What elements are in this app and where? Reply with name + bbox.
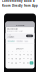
button[interactable]: 29 [26,61,29,64]
button[interactable]: 14 [22,53,26,56]
button[interactable]: 13 [18,53,22,56]
staticText: 15 [27,54,29,56]
staticText: Parking [17,40,23,42]
staticText: M [12,50,13,52]
button[interactable]: 18 [10,57,14,60]
button[interactable]: 20 [18,57,22,60]
button[interactable]: Parking [16,40,23,42]
staticText: Grand Hotel [16,24,24,26]
staticText: 22 [27,58,29,60]
button[interactable]: Book [26,35,33,37]
staticText: 13 [19,54,21,56]
staticText: 16 [30,54,32,56]
staticText: Deluxe King Suite [7,28,18,30]
staticText: 20 [19,58,21,60]
button[interactable]: Breakfast [7,40,15,42]
button[interactable]: Spa [24,40,28,42]
staticText: 29 [27,62,29,64]
staticText: 14 [23,54,25,56]
staticText: Room Directly from App [2,4,38,7]
staticText: 12 [15,54,17,56]
staticText: Book [28,35,32,37]
button[interactable]: 16 [30,53,33,56]
staticText: $180 / night [7,36,14,38]
button[interactable]: 10 [7,53,10,56]
staticText: 18 [11,58,13,60]
button[interactable]: 19 [14,57,18,60]
button[interactable]: 21 [22,57,26,60]
button[interactable]: 12 [14,53,18,56]
staticText: 19 [15,58,17,60]
button[interactable]: 11 [10,53,14,56]
staticText: 28 [23,62,25,64]
staticText: S [31,50,32,52]
staticText: Spa [25,40,28,42]
staticText: From [7,34,11,36]
staticText: 10 [7,54,9,56]
button[interactable]: 28 [22,61,26,64]
staticText: T [16,50,17,52]
staticText: 24 [7,62,9,64]
button[interactable]: 17 [7,57,10,60]
staticText: 11 [11,54,13,56]
staticText: City view · 32 sqm · Free wifi [7,30,23,32]
staticText: 17 [7,58,9,60]
staticText: F [27,50,28,52]
staticText: 23 [30,58,32,60]
button[interactable]: 27 [18,61,22,64]
button[interactable]: 15 [26,53,29,56]
button[interactable]: 23 [30,57,33,60]
staticText: Breakfast [7,40,14,42]
button[interactable]: 25 [10,61,14,64]
staticText: Conveniently Book a [2,0,35,3]
button[interactable]: 26 [14,61,18,64]
staticText: June 2024 [16,48,23,50]
staticText: 25 [11,62,13,64]
button[interactable]: 24 [7,61,10,64]
staticText: 30 [30,62,32,64]
staticText: T [23,50,24,52]
staticText: S [8,50,9,52]
button[interactable]: 22 [26,57,29,60]
button[interactable]: 30 [30,61,33,64]
staticText: 26 [15,62,17,64]
staticText: 21 [23,58,25,60]
staticText: 27 [19,62,21,64]
